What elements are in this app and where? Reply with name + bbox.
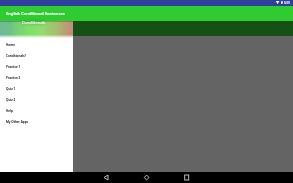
- button[interactable]: Home: [132, 172, 160, 183]
- button[interactable]: Home: [0, 39, 73, 50]
- staticText: Conditionals: [22, 20, 46, 25]
- button[interactable]: Recent apps: [172, 172, 200, 183]
- staticText: English Conditional Sentences: [6, 11, 65, 17]
- staticText: Quiz 1: [6, 87, 16, 91]
- staticText: Practice 1: [6, 65, 21, 69]
- button[interactable]: Quiz 2: [0, 94, 73, 105]
- button[interactable]: My Other Apps: [0, 116, 73, 127]
- staticText: Quiz 2: [6, 98, 16, 102]
- staticText: Conditionals?: [6, 54, 26, 58]
- staticText: Conditionals?: [6, 54, 26, 58]
- staticText: Home: [6, 43, 15, 47]
- staticText: 5:39: [284, 1, 290, 5]
- button[interactable]: Quiz 1: [0, 83, 73, 94]
- button[interactable]: Practice 2: [0, 72, 73, 83]
- button[interactable]: Conditionals?: [0, 50, 73, 61]
- button[interactable]: Back: [92, 172, 120, 183]
- staticText: My Other Apps: [6, 120, 29, 124]
- staticText: Help: [6, 109, 13, 113]
- staticText: Practice 1: [6, 65, 21, 69]
- staticText: My Other Apps: [6, 120, 29, 124]
- staticText: Quiz 1: [6, 87, 16, 91]
- staticText: Practice 2: [6, 76, 21, 80]
- staticText: Home: [6, 43, 15, 47]
- staticText: Practice 2: [6, 76, 21, 80]
- staticText: Help: [6, 109, 13, 113]
- button[interactable]: Practice 1: [0, 61, 73, 72]
- button[interactable]: Help: [0, 105, 73, 116]
- staticText: Quiz 2: [6, 98, 16, 102]
